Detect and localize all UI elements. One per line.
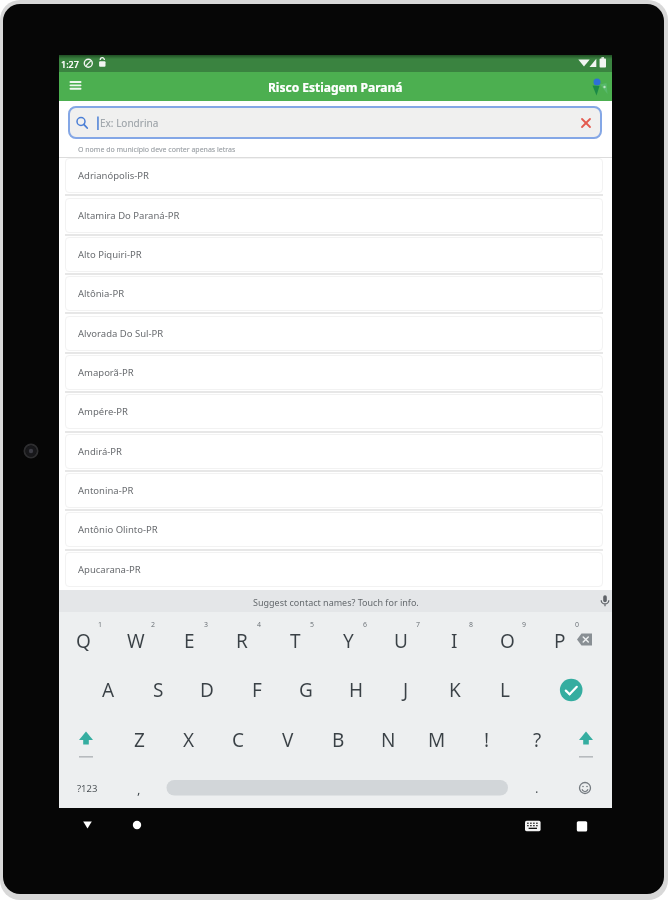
staticText: 5 [310,620,315,630]
staticText: O nome do município deve conter apenas l… [78,145,236,155]
staticText: 4 [257,620,262,630]
staticText: H [349,677,364,703]
button[interactable]: I [434,627,474,655]
button[interactable]: Antonina-PR [65,473,603,508]
staticText: 3 [204,620,209,630]
button[interactable]: Altônia-PR [65,276,603,311]
button[interactable]: Antônio Olinto-PR [65,512,603,547]
button[interactable] [166,778,508,798]
staticText: Risco Estiagem Paraná [268,79,403,95]
button[interactable] [123,811,152,839]
button[interactable]: B [318,726,358,754]
staticText: Alto Piquiri-PR [78,248,142,261]
staticText: 8 [469,620,474,630]
button[interactable]: C [218,726,258,754]
button[interactable]: 8 [451,611,491,639]
button[interactable]: N [368,726,408,754]
staticText: V [282,727,294,753]
button[interactable]: ?123 [67,774,107,802]
button[interactable]: X [169,726,209,754]
button[interactable]: K [435,676,475,704]
button[interactable] [66,725,106,755]
button[interactable]: 4 [239,611,279,639]
button[interactable]: 2 [133,611,173,639]
button[interactable]: O [487,627,527,655]
button[interactable]: 1 [80,611,120,639]
staticText: F [252,677,262,703]
staticText: ?123 [77,782,98,795]
button[interactable]: Suggest contact names? Touch for info. [59,590,612,613]
button[interactable]: D [187,676,227,704]
button[interactable] [568,811,597,839]
button[interactable]: F [237,676,277,704]
staticText: Ampére-PR [78,405,128,418]
button[interactable]: Alvorada Do Sul-PR [65,316,603,351]
button[interactable]: T [275,627,315,655]
staticText: J [403,677,409,703]
staticText: L [500,677,510,703]
staticText: K [449,677,461,703]
button[interactable]: Andirá-PR [65,434,603,469]
staticText: R [236,628,248,654]
staticText: Suggest contact names? Touch for info. [253,596,419,608]
button[interactable]: R [222,627,262,655]
button[interactable]: W [116,627,156,655]
staticText: Altônia-PR [78,287,125,300]
button[interactable] [565,774,605,802]
button[interactable]: V [268,726,308,754]
button[interactable]: 6 [345,611,385,639]
staticText: , [137,780,141,798]
button[interactable] [518,811,547,839]
button[interactable] [564,626,604,654]
button[interactable] [575,112,597,134]
button[interactable]: 9 [504,611,544,639]
button[interactable]: Q [63,627,103,655]
button[interactable]: S [138,676,178,704]
staticText: ? [533,727,542,753]
button[interactable] [68,106,602,139]
button[interactable]: 0 [557,611,597,639]
button[interactable]: Altamira Do Paraná-PR [65,198,603,233]
staticText: A [102,677,115,703]
button[interactable]: P [540,627,580,655]
button[interactable]: U [381,627,421,655]
button[interactable]: 7 [398,611,438,639]
button[interactable]: J [386,676,426,704]
staticText: U [394,628,408,654]
staticText: D [200,677,214,703]
staticText: O [500,628,515,654]
button[interactable]: Alto Piquiri-PR [65,237,603,272]
staticText: B [332,727,345,753]
button[interactable]: E [169,627,209,655]
staticText: Alvorada Do Sul-PR [78,327,164,340]
staticText: 1:27 [61,58,79,70]
button[interactable]: 3 [186,611,226,639]
button[interactable] [63,75,95,99]
button[interactable] [566,725,606,755]
staticText: 2 [151,620,156,630]
button[interactable]: ! [467,726,507,754]
staticText: X [183,727,195,753]
button[interactable] [551,675,591,705]
staticText: . [535,779,539,797]
button[interactable]: Adrianópolis-PR [65,158,603,193]
button[interactable] [73,811,102,839]
button[interactable]: H [336,676,376,704]
button[interactable]: L [485,676,525,704]
button[interactable]: Z [119,726,159,754]
button[interactable]: ? [517,726,557,754]
button[interactable]: 5 [292,611,332,639]
button[interactable]: G [286,676,326,704]
staticText: Adrianópolis-PR [78,169,149,182]
button[interactable]: M [417,726,457,754]
button[interactable]: A [88,676,128,704]
button[interactable]: Apucarana-PR [65,552,603,587]
button[interactable]: Ampére-PR [65,394,603,429]
staticText: E [184,628,195,654]
staticText: Andirá-PR [78,445,123,458]
button[interactable]: , [119,775,159,803]
button[interactable]: Y [328,627,368,655]
staticText: W [127,628,145,654]
button[interactable]: . [517,774,557,802]
button[interactable]: Amaporã-PR [65,355,603,390]
